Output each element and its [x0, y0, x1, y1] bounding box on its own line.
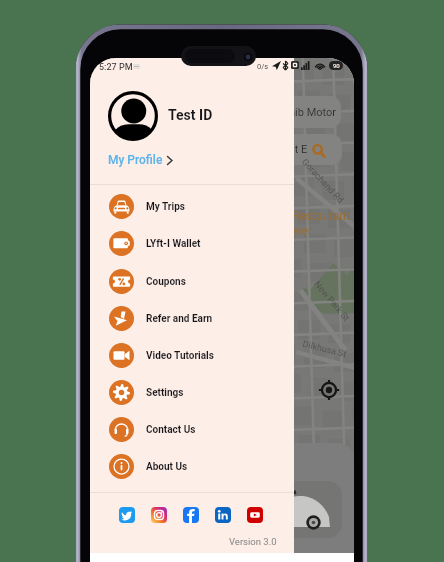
staticText: About Us — [146, 461, 188, 473]
staticText: Settings — [146, 387, 184, 399]
staticText: Contact Us — [146, 424, 196, 436]
button[interactable]: Contact Us — [90, 411, 294, 448]
staticText: 5:27 PM — [99, 62, 133, 73]
staticText: Video Tutorials — [146, 350, 214, 362]
button[interactable]: linkedin — [215, 507, 231, 523]
staticText: My Profile — [108, 153, 163, 167]
button[interactable]: My Trips — [90, 188, 294, 225]
staticText: Refer and Earn — [146, 313, 213, 325]
staticText: Gulan Restaurant — [258, 209, 350, 223]
staticText: Gorachand Rd — [299, 157, 346, 206]
staticText: Version 3.0 — [229, 536, 277, 547]
button[interactable]: instagram — [151, 507, 167, 523]
button[interactable]: youtube — [247, 507, 263, 523]
button[interactable]: LYft-I Wallet — [90, 225, 294, 262]
button[interactable]: Coupons — [90, 263, 294, 300]
staticText: New Park St — [311, 279, 351, 324]
staticText: Bangla Sahib Motor — [240, 106, 336, 119]
button[interactable]: twitter — [119, 507, 135, 523]
staticText: Caterer — [273, 224, 313, 238]
button[interactable]: facebook — [183, 507, 199, 523]
staticText: Coupons — [146, 276, 186, 288]
button[interactable]: Settings — [90, 374, 294, 411]
staticText: My Trips — [146, 201, 185, 213]
staticText: LYft-I Wallet — [146, 238, 201, 250]
button[interactable]: Refer and Earn — [90, 300, 294, 337]
staticText: Dilkhusa St — [301, 339, 348, 360]
staticText: Test ID — [168, 107, 213, 123]
button[interactable]: Video Tutorials — [90, 337, 294, 374]
button[interactable]: My Profile — [107, 151, 176, 169]
staticText: 0/s — [257, 62, 269, 71]
button[interactable]: About Us — [90, 448, 294, 485]
staticText: 90 — [333, 62, 340, 69]
staticText: Select E — [268, 143, 308, 156]
